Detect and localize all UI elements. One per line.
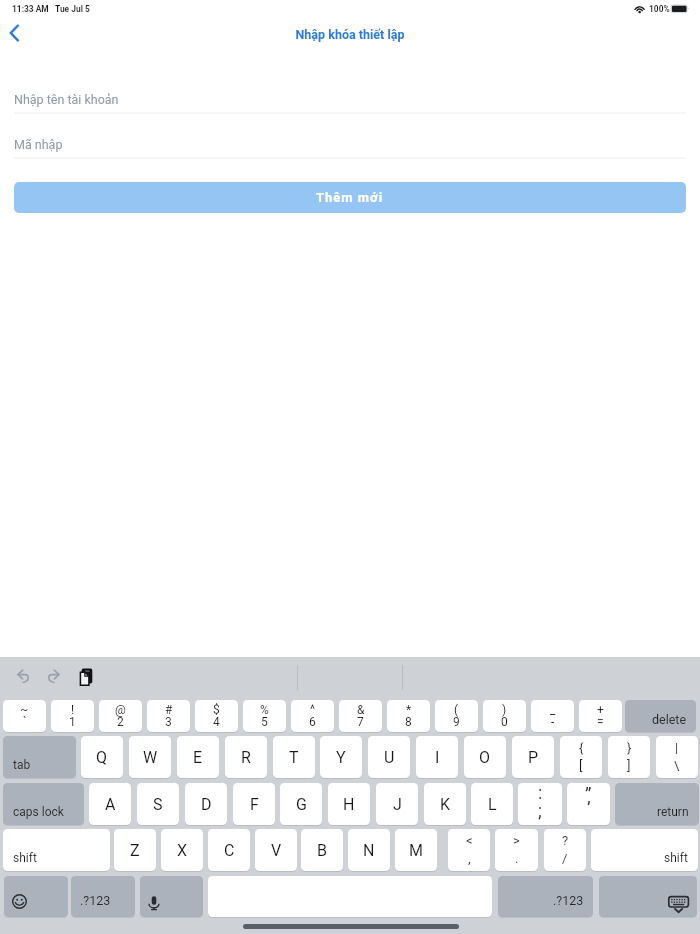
staticText: ; <box>538 800 542 821</box>
staticText: S <box>153 795 163 814</box>
button[interactable]: T <box>273 736 315 778</box>
staticText: . <box>515 851 519 866</box>
button[interactable]: ” <box>567 783 610 825</box>
button[interactable]: delete <box>625 700 696 732</box>
button[interactable]: caps lock <box>3 783 84 825</box>
button[interactable]: F <box>233 783 275 825</box>
button[interactable]: .?123 <box>71 876 135 917</box>
staticText: return <box>657 805 689 819</box>
button[interactable]: | <box>656 736 698 778</box>
button[interactable]: O <box>464 736 506 778</box>
staticText: 3 <box>165 715 172 729</box>
button[interactable]: # <box>147 700 190 732</box>
staticText: I <box>435 748 440 767</box>
button[interactable]: : <box>518 783 562 825</box>
staticText: ” <box>585 784 592 805</box>
staticText: | <box>675 740 679 755</box>
button[interactable]: B <box>301 829 343 871</box>
staticText: ! <box>71 703 75 717</box>
staticText: D <box>201 795 212 814</box>
button[interactable]: H <box>328 783 370 825</box>
button[interactable]: return <box>615 783 699 825</box>
button[interactable]: Paste <box>76 667 96 687</box>
button[interactable]: V <box>255 829 297 871</box>
button[interactable]: Back <box>0 20 32 46</box>
staticText: ^ <box>310 703 316 717</box>
button[interactable]: A <box>89 783 131 825</box>
button[interactable]: Undo <box>13 666 35 688</box>
other: Wi-Fi <box>634 3 647 15</box>
button[interactable]: L <box>471 783 513 825</box>
staticText: Thêm mới <box>316 190 384 205</box>
button[interactable]: N <box>348 829 390 871</box>
button[interactable]: P <box>512 736 554 778</box>
button[interactable]: Redo <box>44 666 66 688</box>
staticText: ` <box>23 715 27 729</box>
staticText: delete <box>652 712 687 727</box>
staticText: 8 <box>405 715 412 729</box>
button[interactable]: ) <box>483 700 526 732</box>
staticText: & <box>357 703 365 717</box>
button[interactable]: { <box>560 736 602 778</box>
button[interactable]: ~ <box>3 700 46 732</box>
button[interactable]: ? <box>544 829 586 871</box>
button[interactable]: shift <box>3 829 110 871</box>
button[interactable]: Q <box>81 736 123 778</box>
button[interactable]: Emoji <box>4 876 68 917</box>
button[interactable]: Y <box>320 736 362 778</box>
staticText: 100% <box>649 4 670 14</box>
button[interactable]: I <box>416 736 458 778</box>
staticText: O <box>479 748 491 767</box>
button[interactable]: < <box>448 829 490 871</box>
button[interactable]: } <box>608 736 650 778</box>
button[interactable]: shift <box>591 829 698 871</box>
button[interactable]: M <box>395 829 437 871</box>
button[interactable]: Hide keyboard <box>599 876 697 917</box>
button[interactable]: X <box>161 829 203 871</box>
staticText: \ <box>674 758 680 773</box>
button[interactable]: > <box>495 829 538 871</box>
button[interactable]: % <box>243 700 286 732</box>
button[interactable]: @ <box>99 700 142 732</box>
staticText: Z <box>130 841 140 860</box>
button[interactable]: .?123 <box>498 876 593 917</box>
button[interactable]: _ <box>531 700 574 732</box>
staticText: , <box>468 851 471 866</box>
staticText: Nhập tên tài khoản <box>14 92 119 107</box>
button[interactable]: K <box>424 783 466 825</box>
staticText: ( <box>454 703 459 717</box>
button[interactable]: D <box>185 783 227 825</box>
staticText: E <box>193 748 203 767</box>
button[interactable]: R <box>225 736 267 778</box>
staticText: @ <box>115 703 126 717</box>
staticText: 5 <box>261 715 268 729</box>
button[interactable]: Dictation <box>140 876 203 917</box>
button[interactable]: E <box>177 736 219 778</box>
button[interactable]: + <box>579 700 622 732</box>
staticText: V <box>271 841 282 860</box>
button[interactable]: J <box>376 783 418 825</box>
staticText: > <box>513 833 520 848</box>
button[interactable]: tab <box>3 736 76 778</box>
staticText: W <box>143 748 158 767</box>
button[interactable]: C <box>208 829 250 871</box>
button[interactable]: ( <box>435 700 478 732</box>
staticText: _ <box>550 703 556 717</box>
staticText: 9 <box>453 715 460 729</box>
button[interactable]: ! <box>51 700 94 732</box>
staticText: .?123 <box>80 893 111 908</box>
button[interactable]: * <box>387 700 430 732</box>
button[interactable]: W <box>129 736 171 778</box>
button[interactable]: Thêm mới <box>14 182 686 213</box>
staticText: G <box>296 795 307 814</box>
button[interactable]: & <box>339 700 382 732</box>
staticText: Y <box>336 748 346 767</box>
button[interactable]: S <box>137 783 179 825</box>
button[interactable]: $ <box>195 700 238 732</box>
button[interactable]: U <box>368 736 410 778</box>
staticText: 6 <box>309 715 316 729</box>
button[interactable]: ^ <box>291 700 334 732</box>
button[interactable]: Z <box>114 829 156 871</box>
button[interactable]: G <box>280 783 322 825</box>
